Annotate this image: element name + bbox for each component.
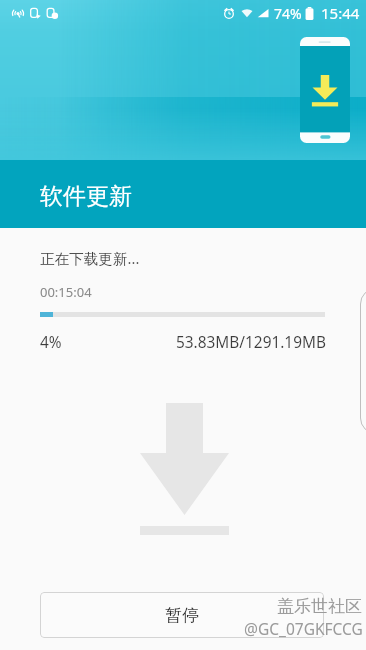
staticText: 暂停 <box>165 605 199 626</box>
staticText: 15:44 <box>321 3 360 23</box>
staticText: 正在下载更新... <box>40 248 140 268</box>
staticText: 74% <box>274 4 302 23</box>
staticText: 53.83MB/1291.19MB <box>176 332 326 353</box>
staticText: @GC_07GKFCCG <box>244 618 363 639</box>
staticText: 盖乐世社区 <box>277 596 362 617</box>
staticText: 软件更新 <box>40 182 132 211</box>
button[interactable]: 暂停 <box>40 592 324 638</box>
staticText: 4% <box>40 332 62 353</box>
staticText: 00:15:04 <box>40 283 92 301</box>
